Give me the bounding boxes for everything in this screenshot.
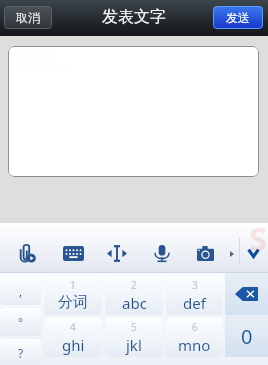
staticText: def bbox=[183, 293, 206, 313]
staticText: , bbox=[19, 283, 23, 299]
staticText: jkl bbox=[126, 335, 142, 355]
staticText: 6 bbox=[192, 320, 198, 334]
button[interactable]: 4 bbox=[44, 318, 102, 357]
staticText: 4 bbox=[70, 320, 76, 334]
button[interactable]: Voice input bbox=[140, 233, 184, 273]
staticText: 2 bbox=[131, 278, 137, 292]
button[interactable]: ° bbox=[0, 308, 41, 336]
button[interactable]: 0 bbox=[225, 315, 268, 357]
button[interactable]: 6 bbox=[166, 318, 223, 357]
button[interactable]: Backspace bbox=[225, 273, 268, 315]
staticText: abc bbox=[122, 293, 147, 313]
staticText: S bbox=[249, 216, 268, 261]
staticText: 3 bbox=[192, 278, 198, 292]
staticText: ? bbox=[18, 345, 24, 361]
button[interactable]: Keyboard bbox=[51, 233, 95, 273]
staticText: 1 bbox=[70, 278, 76, 292]
button[interactable]: Hide keyboard bbox=[240, 241, 267, 265]
button[interactable]: 1 bbox=[44, 276, 102, 315]
staticText: 0 bbox=[241, 323, 253, 350]
button[interactable]: Camera bbox=[183, 233, 227, 273]
staticText: 分词 bbox=[58, 293, 88, 312]
staticText: ghi bbox=[62, 335, 85, 355]
staticText: 取消 bbox=[16, 10, 40, 25]
button[interactable]: 2 bbox=[105, 276, 163, 315]
button[interactable]: 分享新鲜事... bbox=[8, 46, 259, 177]
staticText: 5 bbox=[131, 320, 137, 334]
staticText: 发送 bbox=[226, 10, 250, 25]
button[interactable]: 5 bbox=[105, 318, 163, 357]
button[interactable]: Move cursor bbox=[95, 233, 139, 273]
staticText: ° bbox=[18, 314, 24, 330]
staticText: mno bbox=[178, 335, 211, 355]
button[interactable]: Attach media bbox=[5, 233, 49, 273]
button[interactable]: ? bbox=[0, 339, 41, 365]
button[interactable]: 3 bbox=[166, 276, 223, 315]
staticText: 发表文字 bbox=[102, 7, 166, 27]
button[interactable]: , bbox=[0, 277, 41, 305]
button[interactable]: 发送 bbox=[213, 6, 263, 29]
button[interactable]: 取消 bbox=[4, 6, 52, 29]
button[interactable]: More bbox=[223, 245, 241, 263]
